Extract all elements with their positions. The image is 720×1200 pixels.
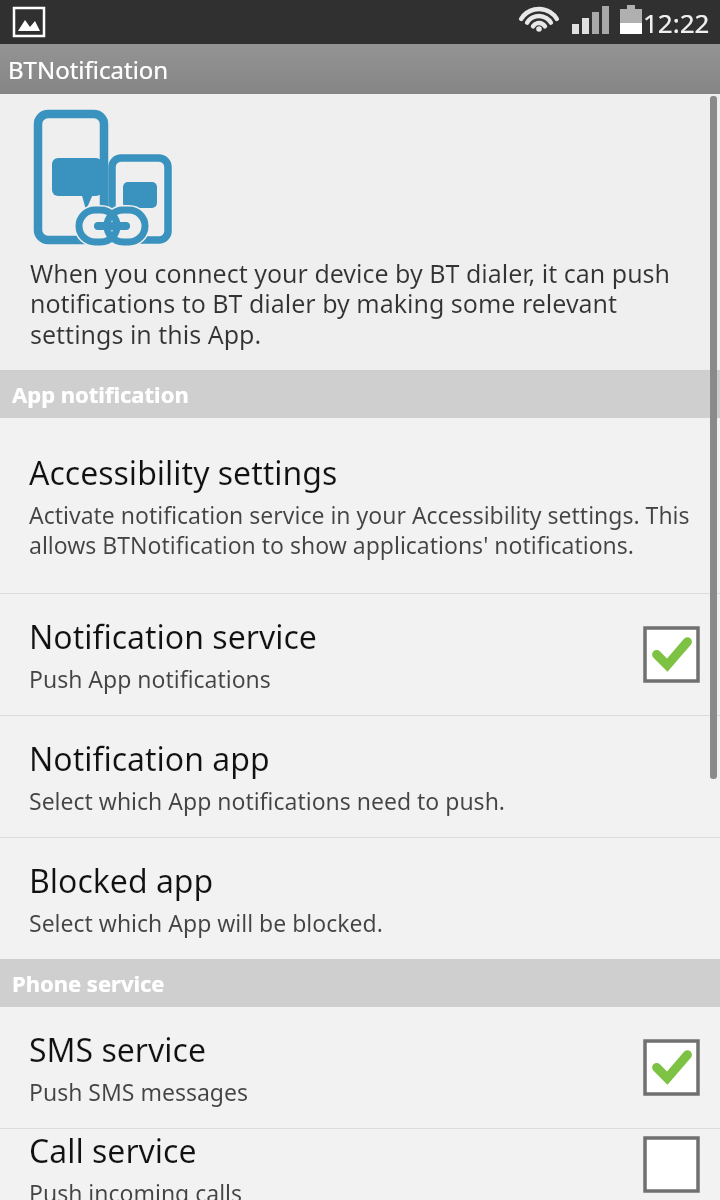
staticText: BTNotification — [8, 53, 169, 86]
staticText: SMS service — [29, 1028, 206, 1072]
button[interactable]: Notification service, checked — [645, 628, 698, 681]
button[interactable]: Accessibility settings — [0, 418, 720, 593]
button[interactable]: Call service, unchecked — [645, 1138, 698, 1191]
button[interactable]: Call service — [0, 1129, 720, 1200]
staticText: Blocked app — [29, 859, 214, 903]
staticText: App notification — [12, 379, 189, 409]
staticText: Activate notification service in your Ac… — [29, 499, 698, 561]
staticText: When you connect your device by BT diale… — [30, 256, 692, 352]
button[interactable]: Notification service — [0, 594, 720, 715]
staticText: Select which App notifications need to p… — [29, 785, 506, 816]
button[interactable]: Blocked app — [0, 838, 720, 959]
staticText: Push SMS messages — [29, 1076, 248, 1107]
button[interactable]: SMS service — [0, 1007, 720, 1128]
staticText: 12:22 — [643, 5, 710, 40]
staticText: Notification app — [29, 737, 270, 781]
staticText: Push App notifications — [29, 663, 271, 694]
staticText: Push incoming calls — [29, 1177, 243, 1200]
staticText: Phone service — [12, 968, 165, 998]
staticText: Notification service — [29, 615, 317, 659]
staticText: Select which App will be blocked. — [29, 907, 383, 938]
button[interactable]: Notification app — [0, 716, 720, 837]
staticText: Accessibility settings — [29, 451, 338, 495]
button[interactable]: SMS service, checked — [645, 1041, 698, 1094]
staticText: Call service — [29, 1129, 197, 1173]
